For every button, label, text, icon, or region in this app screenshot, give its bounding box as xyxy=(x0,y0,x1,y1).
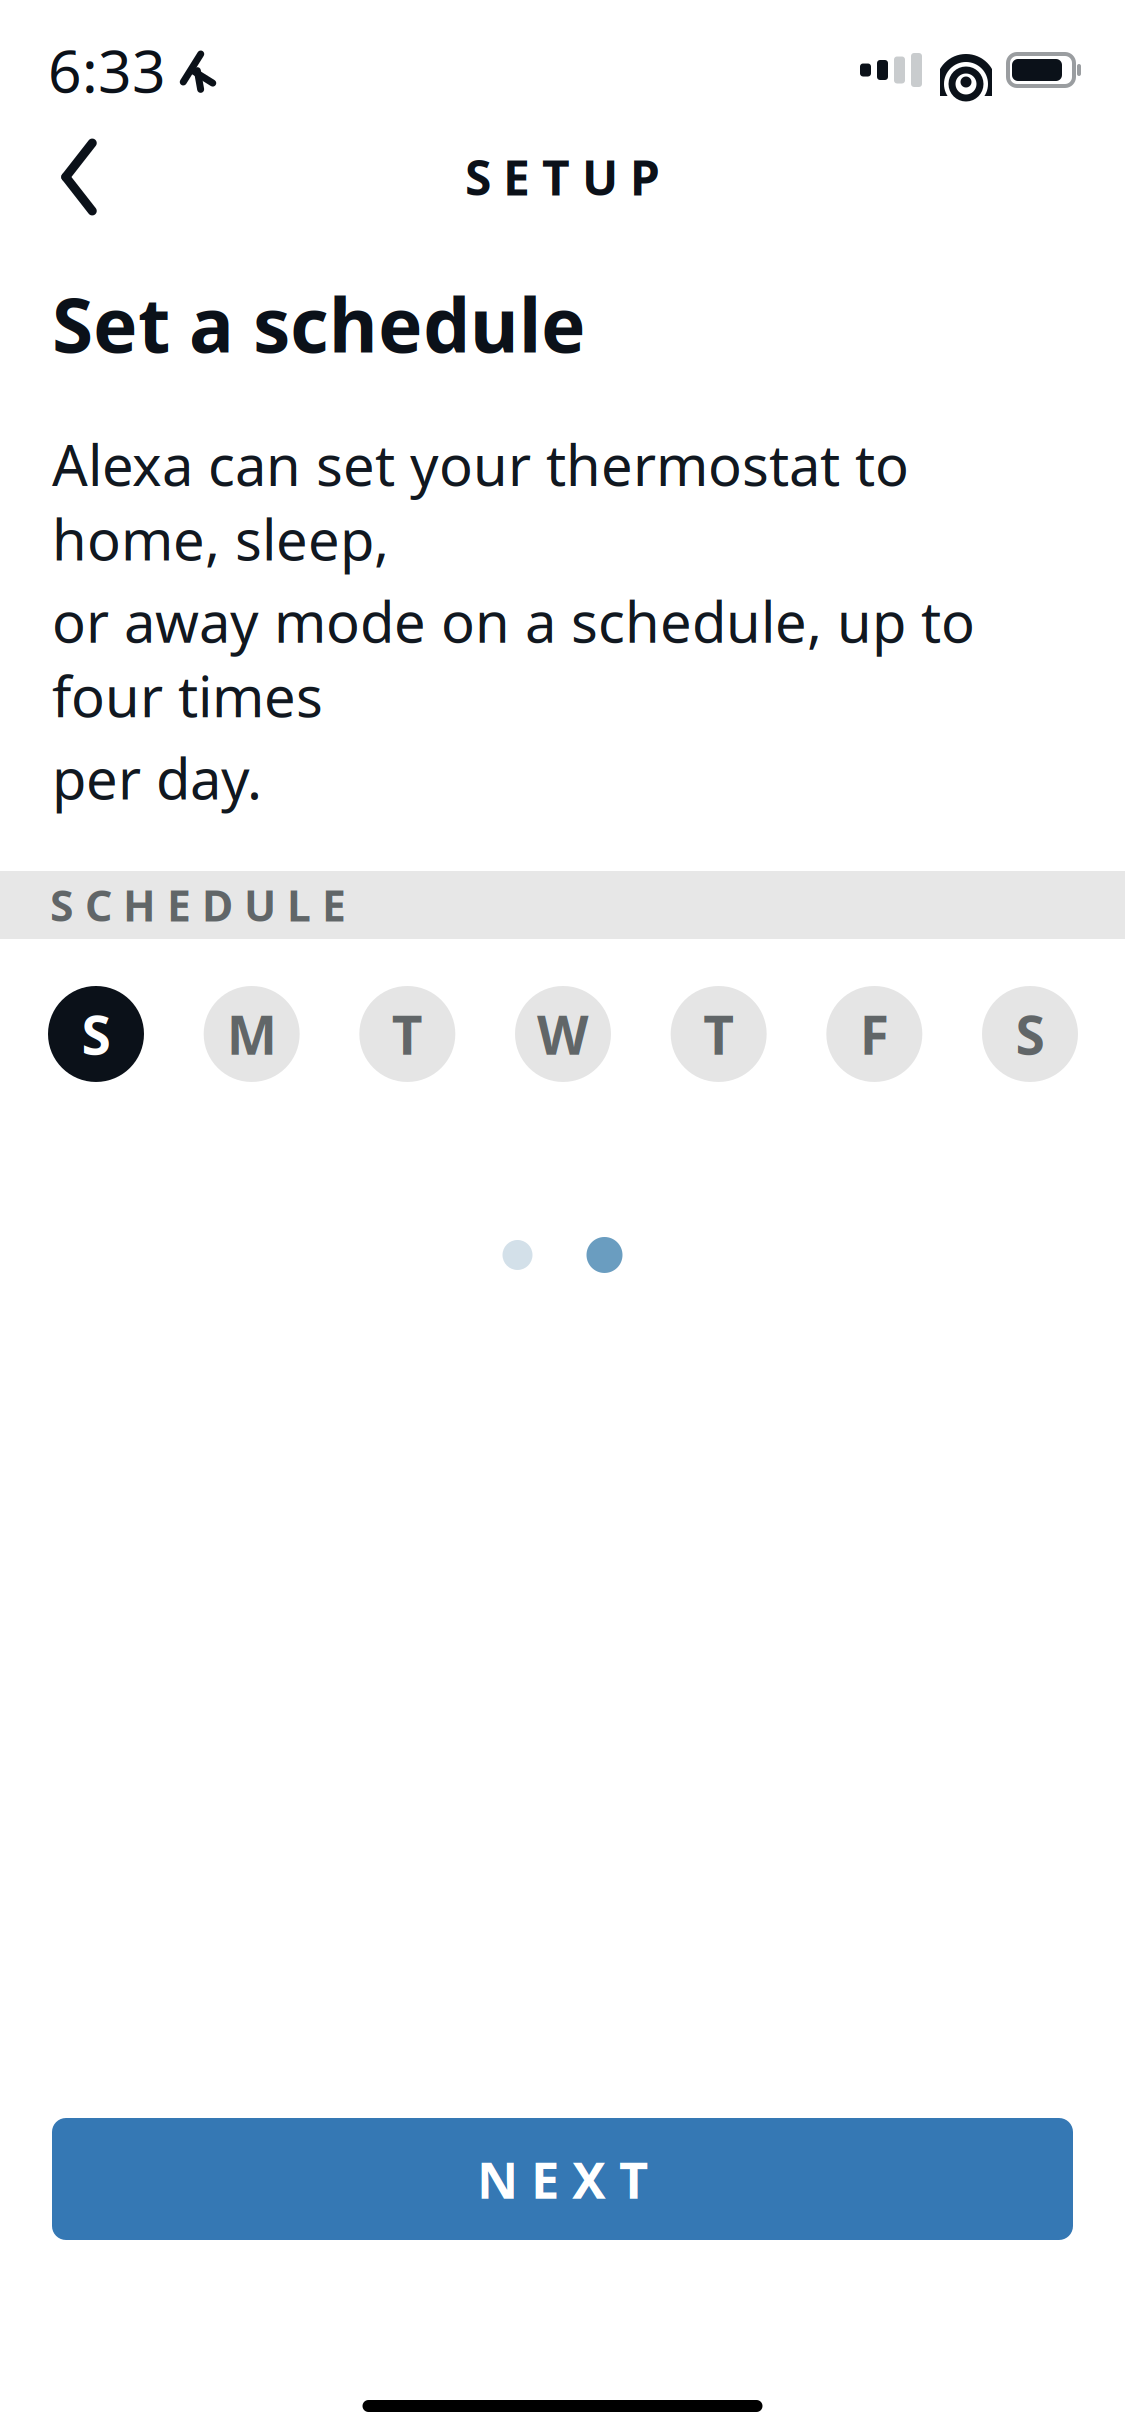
staticText: Set a schedule xyxy=(52,274,586,373)
staticText: T xyxy=(703,999,734,1069)
button[interactable]: Back xyxy=(24,122,134,232)
button[interactable]: S xyxy=(48,986,144,1082)
staticText: Alexa can set your thermostat to home, s… xyxy=(52,427,909,576)
button[interactable]: T xyxy=(671,986,767,1082)
staticText: T xyxy=(392,999,423,1069)
button[interactable]: M xyxy=(204,986,300,1082)
staticText: W xyxy=(537,999,589,1069)
staticText: or away mode on a schedule, up to four t… xyxy=(52,584,975,733)
staticText: per day. xyxy=(52,741,262,815)
staticText: S C H E D U L E xyxy=(50,877,346,933)
staticText: F xyxy=(860,999,889,1069)
staticText: S E T U P xyxy=(465,145,660,209)
button[interactable]: S xyxy=(982,986,1078,1082)
staticText: M xyxy=(227,999,277,1069)
button[interactable]: T xyxy=(359,986,455,1082)
button[interactable]: N E X T xyxy=(52,2118,1073,2240)
button[interactable]: F xyxy=(826,986,922,1082)
staticText: N E X T xyxy=(477,2145,648,2213)
button[interactable]: W xyxy=(515,986,611,1082)
staticText: S xyxy=(81,999,110,1069)
staticText: S xyxy=(1015,999,1044,1069)
staticText: 6:33 xyxy=(48,31,166,109)
